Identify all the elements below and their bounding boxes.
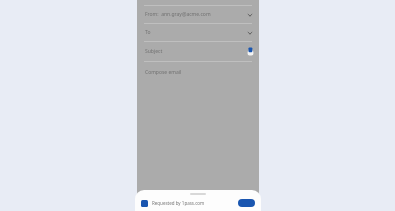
button[interactable]: Continue <box>238 199 255 207</box>
other: Expand <box>247 30 253 36</box>
button[interactable]: From: ann.gray@acme.com <box>137 6 259 23</box>
staticText: To <box>145 29 151 36</box>
button[interactable]: App icon <box>141 200 148 207</box>
button[interactable]: To <box>137 24 259 41</box>
other: Expand <box>247 12 253 18</box>
staticText: Requested by 1pass.com <box>152 200 235 206</box>
button[interactable]: Compose email <box>137 62 259 82</box>
button[interactable]: Subject <box>137 42 259 61</box>
staticText: Subject <box>145 48 163 55</box>
button[interactable]: Autofill suggestion <box>246 47 255 56</box>
staticText: Compose email <box>145 69 182 76</box>
staticText: From: ann.gray@acme.com <box>145 11 211 18</box>
